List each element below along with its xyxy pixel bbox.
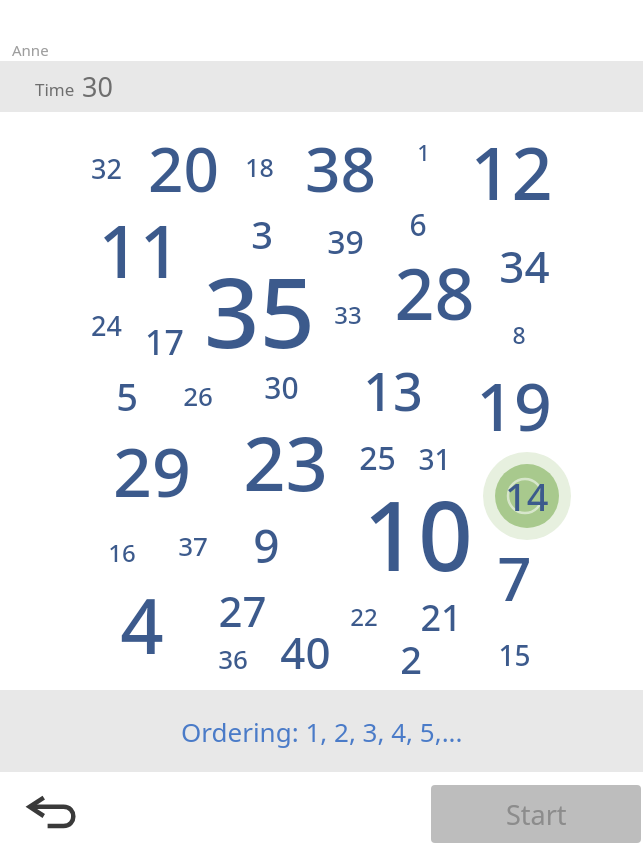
button[interactable]: 34 bbox=[493, 236, 556, 296]
staticText: 23 bbox=[243, 412, 328, 513]
staticText: Time bbox=[35, 78, 75, 101]
staticText: 30 bbox=[82, 68, 113, 105]
staticText: 32 bbox=[91, 150, 122, 187]
staticText: 19 bbox=[476, 360, 552, 450]
button[interactable]: 24 bbox=[86, 307, 127, 344]
staticText: 17 bbox=[145, 319, 184, 365]
staticText: 15 bbox=[498, 636, 531, 674]
staticText: 29 bbox=[113, 424, 191, 516]
button[interactable]: 25 bbox=[353, 436, 401, 480]
button[interactable]: 9 bbox=[248, 514, 285, 577]
staticText: 28 bbox=[394, 245, 475, 340]
button[interactable]: 27 bbox=[212, 582, 272, 639]
button[interactable]: 40 bbox=[274, 622, 337, 682]
button[interactable]: 19 bbox=[469, 360, 559, 450]
button[interactable]: Ordering: 1, 2, 3, 4, 5,... bbox=[0, 690, 643, 772]
button[interactable]: 21 bbox=[414, 593, 467, 642]
button[interactable]: 12 bbox=[463, 123, 560, 221]
button[interactable]: 31 bbox=[413, 440, 456, 478]
button[interactable]: 14 bbox=[493, 462, 561, 530]
staticText: 9 bbox=[253, 514, 280, 577]
button[interactable]: 2 bbox=[395, 633, 427, 685]
button[interactable]: 29 bbox=[106, 424, 198, 516]
staticText: 31 bbox=[418, 440, 451, 478]
button[interactable]: 23 bbox=[235, 412, 335, 513]
staticText: 24 bbox=[91, 307, 122, 344]
staticText: Anne bbox=[12, 40, 49, 60]
button[interactable]: Undo bbox=[18, 788, 90, 844]
staticText: 13 bbox=[363, 355, 423, 426]
button[interactable]: 17 bbox=[139, 319, 189, 365]
staticText: 1 bbox=[417, 137, 430, 167]
staticText: 38 bbox=[305, 126, 376, 210]
button[interactable]: 15 bbox=[493, 636, 536, 674]
staticText: 16 bbox=[108, 536, 136, 569]
staticText: 21 bbox=[420, 593, 462, 642]
button[interactable]: 6 bbox=[404, 204, 431, 245]
staticText: 2 bbox=[400, 633, 422, 685]
staticText: 22 bbox=[350, 600, 378, 633]
button[interactable]: 13 bbox=[357, 355, 429, 426]
staticText: 35 bbox=[204, 244, 315, 376]
button[interactable]: 35 bbox=[195, 244, 323, 376]
staticText: 39 bbox=[327, 220, 364, 264]
button[interactable]: 22 bbox=[345, 600, 383, 633]
staticText: 25 bbox=[359, 436, 396, 480]
staticText: 20 bbox=[148, 126, 219, 210]
button[interactable]: 18 bbox=[240, 150, 279, 184]
button[interactable]: Start bbox=[431, 785, 641, 843]
staticText: 30 bbox=[264, 367, 299, 408]
staticText: Start bbox=[506, 796, 567, 833]
button[interactable]: 16 bbox=[103, 536, 141, 569]
button[interactable]: 26 bbox=[178, 378, 218, 413]
staticText: 5 bbox=[116, 370, 138, 422]
staticText: 34 bbox=[499, 236, 550, 296]
button[interactable]: 1 bbox=[412, 137, 434, 167]
button[interactable]: 39 bbox=[321, 220, 369, 264]
staticText: 10 bbox=[363, 468, 473, 599]
staticText: 40 bbox=[280, 622, 331, 682]
staticText: 37 bbox=[178, 528, 208, 563]
staticText: 33 bbox=[334, 298, 362, 331]
button[interactable]: 37 bbox=[173, 528, 213, 563]
staticText: 8 bbox=[512, 319, 526, 350]
staticText: 4 bbox=[120, 573, 164, 676]
staticText: 7 bbox=[497, 537, 532, 619]
button[interactable]: 5 bbox=[111, 370, 143, 422]
staticText: 36 bbox=[218, 641, 248, 676]
button[interactable]: 8 bbox=[508, 319, 530, 350]
button[interactable]: 33 bbox=[329, 298, 367, 331]
staticText: 27 bbox=[218, 582, 267, 639]
button[interactable]: 4 bbox=[114, 573, 169, 676]
button[interactable]: 30 bbox=[259, 367, 304, 408]
button[interactable]: Time bbox=[0, 61, 643, 112]
button[interactable]: 20 bbox=[141, 126, 226, 210]
button[interactable]: 7 bbox=[492, 537, 537, 619]
staticText: 14 bbox=[505, 470, 549, 522]
button[interactable]: 36 bbox=[213, 641, 253, 676]
staticText: Ordering: 1, 2, 3, 4, 5,... bbox=[181, 714, 463, 749]
staticText: 12 bbox=[470, 123, 553, 221]
button[interactable]: 38 bbox=[298, 126, 383, 210]
staticText: 6 bbox=[409, 204, 427, 245]
staticText: 18 bbox=[245, 150, 274, 184]
button[interactable]: 3 bbox=[246, 208, 278, 260]
staticText: 26 bbox=[183, 378, 213, 413]
button[interactable]: 10 bbox=[354, 468, 481, 599]
staticText: 3 bbox=[251, 208, 273, 260]
button[interactable]: 32 bbox=[86, 150, 127, 187]
button[interactable]: 28 bbox=[387, 245, 482, 340]
button[interactable]: 11 bbox=[91, 201, 188, 299]
staticText: 11 bbox=[98, 201, 181, 299]
